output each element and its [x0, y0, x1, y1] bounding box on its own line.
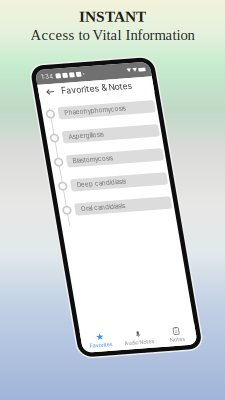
staticText: Aspergillosis — [28, 72, 63, 79]
button[interactable]: Blastomycosis — [22, 94, 118, 106]
button[interactable]: Audio Notes — [44, 272, 82, 294]
staticText: Blastomycosis — [28, 96, 68, 104]
staticText: Favorites & Notes — [28, 24, 99, 34]
button[interactable]: Oral candidiasis — [22, 143, 118, 155]
staticText: Access to Vital Information — [30, 27, 194, 43]
staticText: Oral candidiasis — [28, 145, 72, 153]
staticText: Audio Notes — [48, 284, 78, 291]
staticText: Deep candidiasis — [28, 121, 77, 128]
button[interactable]: Deep candidiasis — [22, 118, 118, 131]
button[interactable]: Aspergillosis — [22, 69, 118, 82]
staticText: INSTANT — [79, 8, 146, 25]
button[interactable]: Phaeohyphomycosis — [22, 45, 118, 57]
button[interactable]: Favorites — [6, 272, 44, 294]
